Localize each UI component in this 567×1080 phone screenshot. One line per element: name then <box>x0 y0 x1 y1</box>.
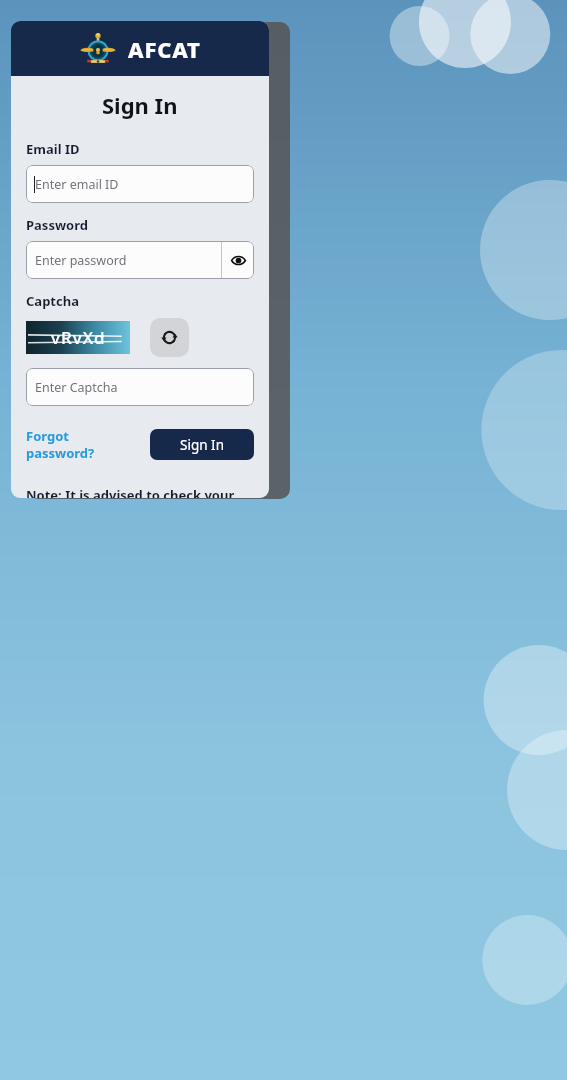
button[interactable]: Show password <box>222 241 254 279</box>
button[interactable]: Enter Captcha <box>26 368 254 406</box>
staticText: vRvXd <box>51 326 106 349</box>
staticText: Sign In <box>180 436 224 454</box>
staticText: Enter email ID <box>35 176 119 193</box>
staticText: Email ID <box>26 140 80 158</box>
button[interactable]: vRvXd <box>26 321 130 354</box>
button[interactable]: Enter email ID <box>26 165 254 203</box>
button[interactable]: Refresh captcha <box>150 318 189 357</box>
staticText: Password <box>26 216 88 234</box>
staticText: Captcha <box>26 292 79 310</box>
staticText: AFCAT <box>128 34 201 64</box>
staticText: Enter Captcha <box>35 379 118 396</box>
staticText: Forgot password? <box>26 427 95 462</box>
staticText: Enter password <box>35 252 127 269</box>
staticText: Sign In <box>102 90 178 120</box>
button[interactable]: Enter password <box>26 252 221 269</box>
button[interactable]: Sign In <box>150 429 254 460</box>
staticText: Note: It is advised to check your SPAM f… <box>26 486 254 498</box>
button[interactable]: Forgot password? <box>26 427 106 462</box>
